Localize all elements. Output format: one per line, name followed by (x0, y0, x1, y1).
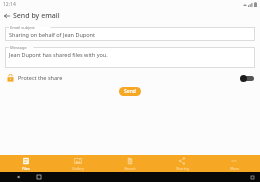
button[interactable]: Send (119, 87, 141, 96)
button[interactable]: Jean Dupont has shared files with you. (5, 47, 255, 68)
button[interactable]: Back (14, 173, 22, 181)
staticText: Message (10, 45, 27, 50)
staticText: Email subject (10, 25, 35, 30)
button[interactable]: More (208, 155, 260, 172)
staticText: Protect the share (18, 74, 63, 81)
button[interactable]: Recent apps (249, 174, 255, 180)
staticText: 12:14 (3, 1, 16, 8)
staticText: Send (124, 88, 136, 95)
button[interactable]: Sharing (156, 155, 208, 172)
button[interactable]: Back (0, 9, 13, 22)
button[interactable]: Recent (104, 155, 156, 172)
staticText: Sharing (176, 166, 189, 171)
staticText: Send by email (13, 11, 60, 21)
button[interactable]: Gallery (52, 155, 104, 172)
staticText: Files (22, 166, 30, 171)
staticText: Recent (124, 166, 136, 171)
staticText: Jean Dupont has shared files with you. (9, 51, 108, 58)
button[interactable]: Files (0, 155, 52, 172)
staticText: More (230, 166, 239, 171)
staticText: Gallery (72, 166, 84, 171)
button[interactable]: Sharing on behalf of Jean Dupont (5, 27, 255, 41)
staticText: Sharing on behalf of Jean Dupont (9, 31, 95, 38)
button[interactable]: Protect the share (0, 71, 260, 84)
button[interactable]: Protect the share (240, 74, 254, 82)
button[interactable]: Home (35, 173, 43, 181)
